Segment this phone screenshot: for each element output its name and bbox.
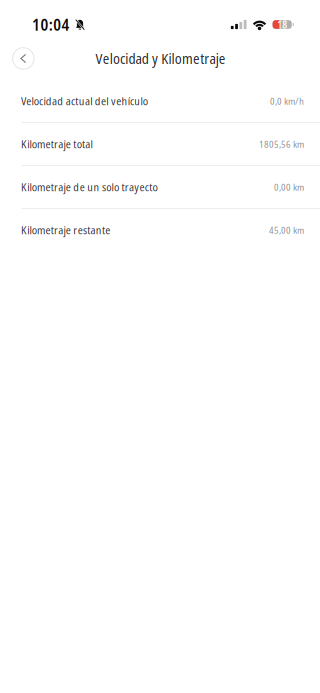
staticText: 0,0 km/h (270, 94, 304, 108)
button[interactable]: Velocidad actual del vehículo (0, 80, 320, 122)
button[interactable]: Kilometraje de un solo trayecto (0, 166, 320, 208)
staticText: Kilometraje restante (21, 222, 110, 238)
staticText: 0,00 km (274, 180, 304, 194)
staticText: 10:04 (32, 14, 70, 35)
staticText: Velocidad y Kilometraje (95, 49, 226, 68)
staticText: Kilometraje de un solo trayecto (21, 179, 157, 195)
staticText: 45,00 km (269, 223, 304, 237)
staticText: 1805,56 km (259, 137, 304, 151)
staticText: Velocidad actual del vehículo (21, 93, 148, 109)
button[interactable]: Back (6, 41, 40, 75)
button[interactable]: Kilometraje restante (0, 209, 320, 251)
staticText: Kilometraje total (21, 136, 92, 152)
staticText: 18 (277, 18, 287, 31)
button[interactable]: Kilometraje total (0, 123, 320, 165)
